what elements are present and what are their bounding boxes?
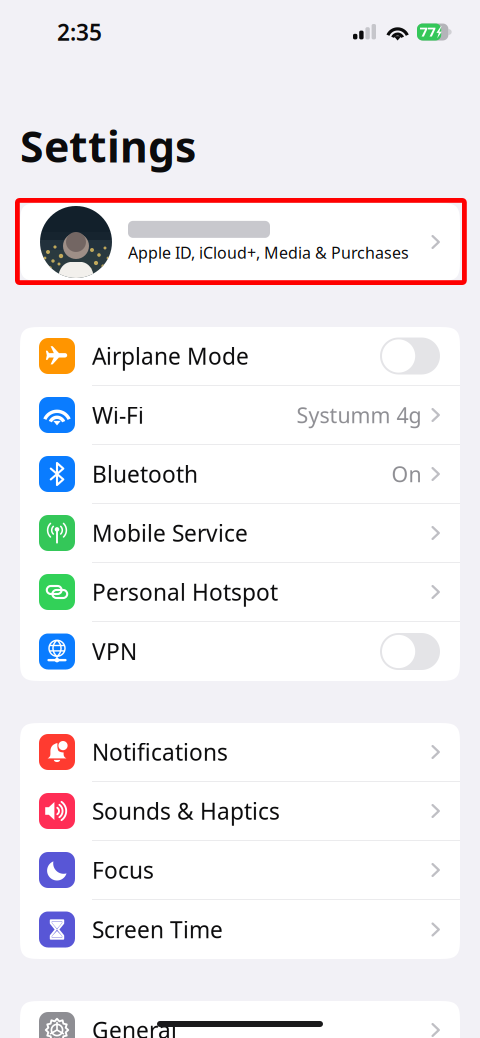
button[interactable]: Notifications [20, 723, 460, 782]
button[interactable]: Personal Hotspot [20, 563, 460, 622]
button[interactable]: Bluetooth [20, 445, 460, 504]
staticText: Systumm 4g [296, 401, 421, 429]
staticText: Screen Time [92, 914, 223, 944]
staticText: Sounds & Haptics [92, 796, 280, 826]
staticText: Mobile Service [92, 518, 248, 548]
button[interactable]: Airplane Mode [20, 327, 460, 386]
staticText: Personal Hotspot [92, 577, 278, 607]
staticText: On [391, 460, 421, 488]
staticText: Focus [92, 855, 154, 885]
button[interactable]: Screen Time [20, 900, 460, 959]
button[interactable]: VPN [20, 622, 460, 681]
staticText: Bluetooth [92, 459, 198, 489]
button[interactable]: Wi-Fi [20, 386, 460, 445]
staticText: Notifications [92, 737, 228, 767]
button[interactable]: General [20, 1001, 460, 1038]
staticText: Airplane Mode [92, 341, 249, 371]
button[interactable]: Apple ID, iCloud+, Media & Purchases [20, 203, 460, 281]
button[interactable]: Mobile Service [20, 504, 460, 563]
staticText: Apple ID, iCloud+, Media & Purchases [128, 242, 409, 263]
staticText: Wi-Fi [92, 400, 144, 430]
button[interactable]: Sounds & Haptics [20, 782, 460, 841]
button[interactable]: Focus [20, 841, 460, 900]
staticText: 2:35 [57, 17, 102, 47]
staticText: Settings [20, 118, 196, 174]
staticText: General [92, 1015, 177, 1038]
staticText: VPN [92, 636, 137, 666]
